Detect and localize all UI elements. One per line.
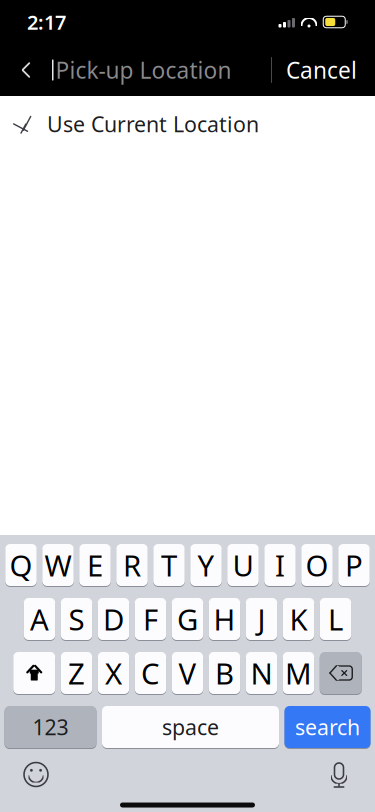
button[interactable]: V <box>172 651 203 694</box>
staticText: X <box>105 653 122 692</box>
staticText: 2:17 <box>27 9 66 35</box>
button[interactable]: E <box>79 543 111 586</box>
button[interactable]: C <box>135 651 166 694</box>
button[interactable]: M <box>283 651 314 694</box>
button[interactable]: S <box>61 597 92 640</box>
staticText: N <box>250 653 272 692</box>
staticText: U <box>232 545 253 584</box>
staticText: Q <box>9 545 32 584</box>
staticText: D <box>103 599 124 638</box>
button[interactable]: X <box>98 651 129 694</box>
button[interactable]: K <box>283 597 314 640</box>
button[interactable]: Dictate <box>317 754 361 794</box>
staticText: Cancel <box>286 55 357 85</box>
button[interactable]: L <box>320 597 351 640</box>
staticText: R <box>123 545 141 584</box>
button[interactable]: D <box>98 597 129 640</box>
button[interactable]: Cancel <box>272 46 371 94</box>
button[interactable]: F <box>135 597 166 640</box>
staticText: search <box>295 713 360 741</box>
button[interactable]: T <box>153 543 185 586</box>
button[interactable]: Q <box>5 543 37 586</box>
button[interactable]: Emoji <box>14 754 58 794</box>
staticText: C <box>141 653 160 692</box>
staticText: J <box>257 599 265 638</box>
button[interactable]: Use Current Location <box>0 96 375 152</box>
staticText: S <box>68 599 84 638</box>
staticText: Z <box>68 653 85 692</box>
staticText: I <box>275 545 285 584</box>
staticText: P <box>345 545 363 584</box>
button[interactable]: Delete <box>320 651 362 694</box>
button[interactable]: P <box>338 543 370 586</box>
staticText: 123 <box>32 713 68 741</box>
staticText: Y <box>197 545 214 584</box>
staticText: space <box>162 713 219 741</box>
button[interactable]: O <box>301 543 333 586</box>
staticText: F <box>143 599 158 638</box>
button[interactable]: R <box>116 543 148 586</box>
staticText: M <box>285 653 312 692</box>
button[interactable]: Back <box>0 46 52 94</box>
button[interactable]: H <box>209 597 240 640</box>
button[interactable]: Y <box>190 543 222 586</box>
button[interactable]: space <box>102 705 279 748</box>
button[interactable]: U <box>227 543 259 586</box>
staticText: E <box>87 545 103 584</box>
staticText: Use Current Location <box>47 110 259 138</box>
staticText: H <box>213 599 235 638</box>
button[interactable]: W <box>42 543 74 586</box>
button[interactable]: Z <box>61 651 92 694</box>
staticText: B <box>215 653 234 692</box>
button[interactable]: I <box>264 543 296 586</box>
staticText: L <box>328 599 343 638</box>
button[interactable]: Shift <box>13 651 55 694</box>
staticText: T <box>161 545 177 584</box>
button[interactable]: N <box>246 651 277 694</box>
staticText: K <box>289 599 307 638</box>
staticText: V <box>178 653 196 692</box>
button[interactable]: search <box>284 705 370 748</box>
button[interactable]: A <box>24 597 55 640</box>
staticText: O <box>305 545 328 584</box>
button[interactable]: 123 <box>4 705 96 748</box>
staticText: G <box>177 599 198 638</box>
button[interactable]: J <box>246 597 277 640</box>
button[interactable]: G <box>172 597 203 640</box>
staticText: Pick-up Location <box>55 55 231 85</box>
staticText: A <box>30 599 49 638</box>
staticText: W <box>44 545 71 584</box>
button[interactable]: B <box>209 651 240 694</box>
